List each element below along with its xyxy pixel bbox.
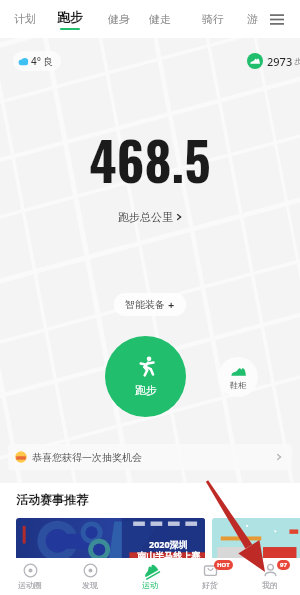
button[interactable]: 2020深圳 — [16, 518, 205, 562]
button[interactable]: 鞋柜 — [218, 357, 258, 397]
button[interactable]: 运动 — [120, 558, 180, 595]
button[interactable]: 恭喜您获得一次抽奖机会 — [8, 444, 292, 470]
button[interactable]: 4° 良 — [13, 51, 61, 71]
staticText: 鞋柜 — [230, 380, 246, 390]
button[interactable]: 发现 — [60, 558, 120, 595]
staticText: 恭喜您获得一次抽奖机会 — [32, 451, 142, 464]
staticText: 97 — [280, 561, 287, 569]
button[interactable]: 跑步 — [54, 0, 86, 38]
button[interactable]: 跑步总公里 — [112, 207, 189, 227]
staticText: 2020深圳 — [149, 538, 188, 550]
staticText: 跑步 — [135, 383, 157, 397]
staticText: 计划 — [14, 12, 36, 26]
button[interactable]: 运动圈 — [0, 558, 60, 595]
button[interactable]: 健走 — [144, 0, 176, 38]
staticText: 步 — [294, 56, 300, 66]
staticText: 智能装备 — [125, 298, 165, 311]
staticText: HOT — [217, 561, 230, 569]
staticText: 我的 — [262, 580, 278, 590]
button[interactable]: 计划 — [9, 0, 41, 38]
staticText: 骑行 — [202, 12, 224, 26]
button[interactable]: HOT — [180, 558, 240, 595]
staticText: 南山半马线上赛 — [137, 550, 200, 561]
staticText: 2973 — [267, 54, 293, 69]
button[interactable] — [212, 518, 300, 562]
staticText: + — [168, 297, 175, 312]
button[interactable]: 游 — [241, 0, 263, 38]
staticText: 跑步 — [57, 9, 83, 25]
staticText: 468.5 — [89, 121, 211, 198]
button[interactable]: 2973 — [245, 51, 300, 71]
button[interactable]: 智能装备 — [114, 293, 186, 316]
button[interactable]: 97 — [240, 558, 300, 595]
button[interactable]: 跑步 — [105, 336, 186, 417]
staticText: 运动 — [142, 580, 158, 590]
staticText: 跑步总公里 — [118, 210, 173, 224]
staticText: 好货 — [202, 580, 218, 590]
staticText: 健身 — [108, 12, 130, 26]
staticText: 游 — [247, 12, 258, 26]
staticText: 发现 — [82, 580, 98, 590]
button[interactable]: Menu — [261, 0, 293, 38]
staticText: 运动圈 — [18, 580, 42, 590]
staticText: 活动赛事推荐 — [16, 492, 88, 507]
button[interactable]: 骑行 — [197, 0, 229, 38]
button[interactable]: 健身 — [103, 0, 135, 38]
staticText: 健走 — [149, 12, 171, 26]
staticText: 4° 良 — [31, 54, 54, 68]
